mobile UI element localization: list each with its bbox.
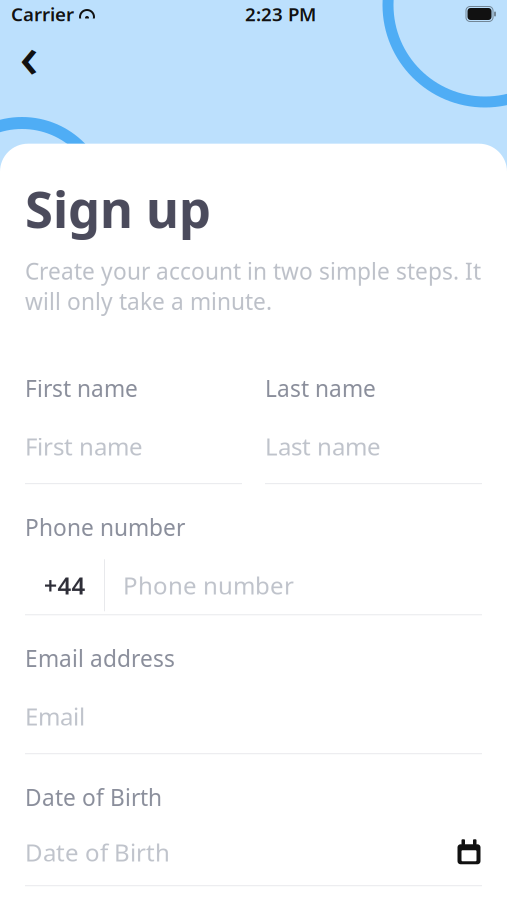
staticText: Date of Birth [25, 782, 162, 812]
button[interactable]: Date of Birth [25, 782, 482, 886]
staticText: +44 [43, 569, 85, 601]
staticText: Email [25, 700, 85, 732]
staticText: Phone number [123, 569, 294, 601]
button[interactable]: First name [25, 373, 242, 484]
staticText: 2:23 PM [245, 2, 316, 26]
staticText: Date of Birth [25, 836, 170, 868]
button[interactable]: Back [9, 41, 49, 81]
staticText: First name [25, 430, 143, 462]
staticText: Carrier [11, 2, 74, 26]
staticText: Last name [265, 430, 381, 462]
staticText: ‹ [19, 16, 38, 94]
button[interactable]: Email address [25, 643, 482, 754]
button[interactable]: Phone number [25, 512, 482, 615]
staticText: Last name [265, 373, 376, 403]
staticText: Phone number [25, 512, 185, 542]
staticText: First name [25, 373, 138, 403]
staticText: Email address [25, 643, 175, 673]
staticText: Sign up [25, 175, 211, 242]
staticText: Create your account in two simple steps.… [25, 256, 481, 316]
button[interactable]: Last name [265, 373, 482, 484]
